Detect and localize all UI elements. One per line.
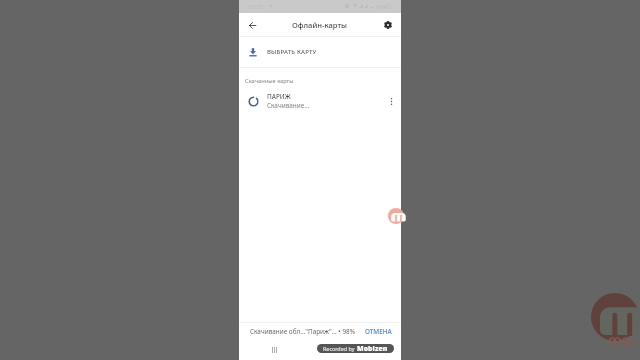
button[interactable]: ОТМЕНА <box>365 327 392 336</box>
staticText: Скачивание обл..."Париж"... • 98% <box>250 327 356 336</box>
staticText: Recorded by <box>323 345 355 352</box>
staticText: Скачивание... <box>267 101 310 110</box>
staticText: ПАРИЖ <box>267 92 291 101</box>
staticText: ВЫБРАТЬ КАРТУ <box>267 48 317 56</box>
button[interactable]: ВЫБРАТЬ КАРТУ <box>239 37 401 67</box>
staticText: Mobizen <box>357 344 388 353</box>
button[interactable]: More options <box>382 88 401 114</box>
staticText: Офлайн-карты <box>292 20 348 30</box>
staticText: ОТМЕНА <box>365 327 392 336</box>
staticText: 45% <box>376 3 388 11</box>
staticText: Скачанные карты <box>245 77 294 85</box>
button[interactable]: Recents <box>268 344 280 356</box>
button[interactable]: Back <box>244 17 260 33</box>
button[interactable]: ПАРИЖ <box>239 88 401 114</box>
button[interactable]: Settings <box>380 17 396 33</box>
